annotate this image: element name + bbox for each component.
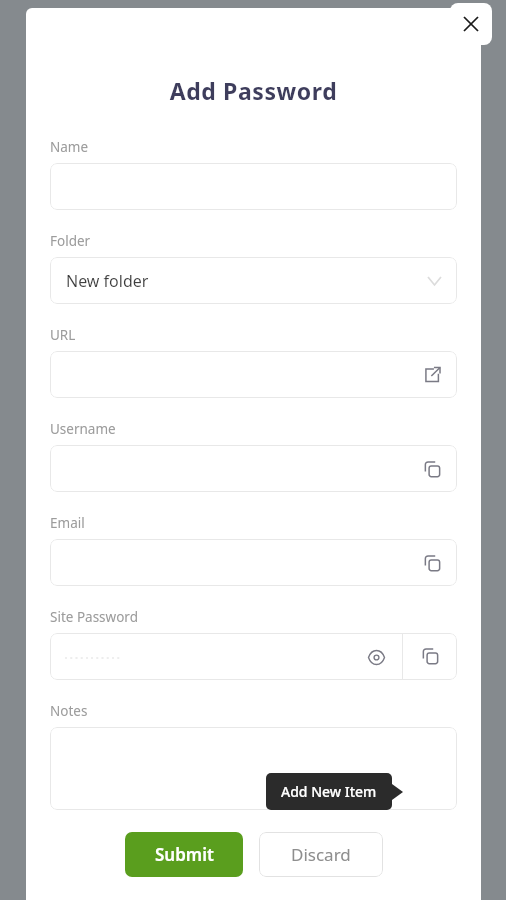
staticText: Username [50,420,116,438]
button[interactable]: Show password [364,645,388,669]
button[interactable]: New folder [50,257,457,304]
button[interactable]: ··········· [50,633,402,680]
staticText: Folder [50,232,91,250]
staticText: Submit [155,843,214,866]
button[interactable] [50,163,457,210]
staticText: New folder [66,270,149,292]
staticText: ··········· [64,647,122,667]
button[interactable]: Copy password [403,633,457,680]
staticText: Name [50,138,89,156]
button[interactable]: Discard [259,832,383,877]
button[interactable]: Open URL [50,351,457,398]
button[interactable]: Submit [125,832,243,877]
button[interactable]: Open URL [419,362,445,388]
staticText: URL [50,326,76,344]
button[interactable]: Close [450,3,492,45]
button[interactable] [50,727,457,810]
staticText: Discard [291,843,351,866]
staticText: Site Password [50,608,138,626]
staticText: Notes [50,702,88,720]
staticText: Email [50,514,85,532]
button[interactable]: Copy email [419,550,445,576]
button[interactable]: Copy username [419,456,445,482]
button[interactable]: Copy username [50,445,457,492]
staticText: Add New Item [281,782,377,801]
staticText: Add Password [26,75,481,106]
button[interactable]: Copy email [50,539,457,586]
